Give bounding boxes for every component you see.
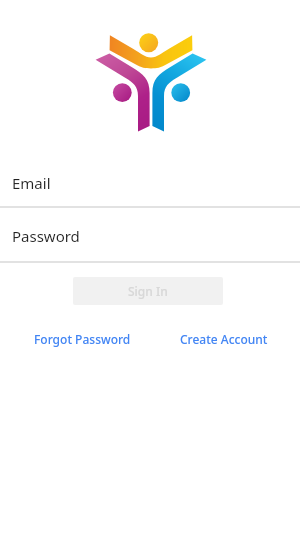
button[interactable]: Sign In bbox=[73, 277, 223, 305]
button[interactable]: Email bbox=[0, 159, 300, 206]
button[interactable]: Forgot Password bbox=[26, 325, 139, 353]
button[interactable]: Create Account bbox=[172, 325, 276, 353]
staticText: Sign In bbox=[128, 283, 168, 299]
staticText: Email bbox=[12, 173, 51, 193]
staticText: Password bbox=[12, 226, 80, 246]
button[interactable]: Password bbox=[0, 211, 300, 260]
staticText: Create Account bbox=[180, 331, 268, 347]
staticText: Forgot Password bbox=[34, 331, 131, 347]
